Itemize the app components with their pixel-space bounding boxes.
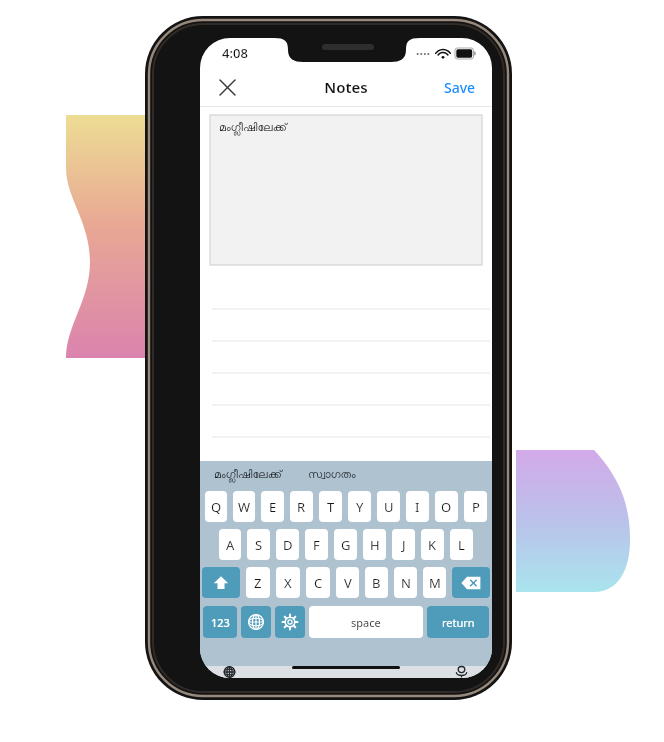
staticText: E [269, 498, 277, 516]
button[interactable]: Save [440, 72, 480, 103]
staticText: N [401, 574, 411, 592]
button[interactable]: P [464, 491, 487, 522]
button[interactable]: Change keyboard language [214, 666, 244, 678]
button[interactable]: S [247, 529, 270, 560]
staticText: O [441, 498, 452, 516]
staticText: മംഗ്ലീഷിലേക്ക് [219, 122, 287, 133]
button[interactable]: Shift [202, 567, 240, 598]
button[interactable]: V [336, 567, 359, 598]
staticText: D [283, 536, 293, 554]
staticText: X [284, 574, 292, 592]
staticText: മംഗ്ലീഷിലേക്ക് [214, 469, 282, 480]
staticText: Notes [324, 77, 368, 97]
button[interactable]: Backspace [452, 567, 490, 598]
staticText: A [226, 536, 235, 554]
staticText: J [402, 536, 406, 554]
button[interactable]: E [261, 491, 284, 522]
button[interactable]: 123 [203, 606, 237, 638]
staticText: S [255, 536, 263, 554]
button[interactable]: U [377, 491, 400, 522]
button[interactable]: D [276, 529, 299, 560]
staticText: B [372, 574, 381, 592]
button[interactable]: മംഗ്ലീഷിലേക്ക് [212, 466, 284, 483]
staticText: 123 [211, 615, 230, 630]
button[interactable]: T [319, 491, 342, 522]
button[interactable]: Z [246, 567, 270, 598]
staticText: Z [254, 574, 262, 592]
button[interactable]: B [365, 567, 388, 598]
staticText: P [472, 498, 480, 516]
staticText: V [344, 574, 352, 592]
staticText: K [428, 536, 437, 554]
button[interactable]: N [394, 567, 417, 598]
button[interactable]: മംഗ്ലീഷിലേക്ക് [210, 115, 482, 265]
button[interactable]: H [363, 529, 386, 560]
button[interactable]: X [276, 567, 300, 598]
staticText: G [341, 536, 351, 554]
button[interactable]: Voice input [446, 666, 476, 678]
button[interactable]: I [406, 491, 429, 522]
button[interactable]: O [435, 491, 458, 522]
button[interactable]: Change language [241, 606, 271, 638]
button[interactable]: Keyboard settings [275, 606, 305, 638]
button[interactable]: C [306, 567, 330, 598]
staticText: Q [211, 498, 222, 516]
staticText: T [327, 498, 335, 516]
staticText: space [351, 615, 381, 630]
staticText: R [297, 498, 306, 516]
staticText: സ്വാഗതം [308, 469, 356, 480]
button[interactable]: return [427, 606, 489, 638]
button[interactable]: Y [348, 491, 371, 522]
staticText: M [429, 574, 441, 592]
button[interactable]: Close [210, 70, 244, 104]
button[interactable]: R [290, 491, 313, 522]
staticText: Y [356, 498, 364, 516]
button[interactable]: M [423, 567, 446, 598]
button[interactable]: സ്വാഗതം [306, 466, 358, 483]
staticText: F [313, 536, 320, 554]
staticText: C [314, 574, 323, 592]
button[interactable]: K [421, 529, 444, 560]
button[interactable]: Q [205, 491, 227, 522]
staticText: Save [444, 78, 476, 97]
staticText: H [370, 536, 380, 554]
button[interactable]: A [219, 529, 241, 560]
staticText: L [458, 536, 465, 554]
button[interactable]: G [334, 529, 357, 560]
staticText: I [415, 498, 420, 516]
button[interactable]: L [450, 529, 473, 560]
button[interactable]: space [309, 606, 423, 638]
staticText: U [384, 498, 394, 516]
staticText: return [442, 615, 475, 630]
button[interactable]: W [233, 491, 255, 522]
staticText: 4:08 [222, 44, 248, 62]
staticText: W [238, 498, 251, 516]
button[interactable]: J [392, 529, 415, 560]
button[interactable]: F [305, 529, 328, 560]
